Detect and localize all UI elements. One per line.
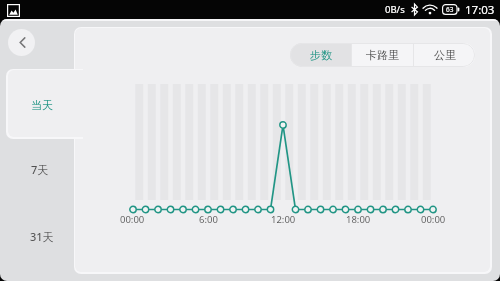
button[interactable]: 公里 [414,43,475,67]
staticText: 0B/s [385,3,405,16]
staticText: 00:00 [120,213,145,226]
other: Battery 63 percent [442,4,460,15]
staticText: 当天 [31,98,53,112]
staticText: 7天 [31,162,49,177]
staticText: 12:00 [271,213,296,226]
staticText: 18:00 [346,213,371,226]
button[interactable]: 卡路里 [352,43,413,67]
other: Wi-Fi [424,5,436,15]
staticText: 63 [446,5,454,14]
staticText: 17:03 [465,2,495,18]
button[interactable]: 31天 [8,203,76,270]
button[interactable]: 7天 [8,136,76,203]
staticText: 31天 [30,229,54,244]
button[interactable]: 当天 [8,71,76,138]
staticText: 00:00 [421,213,446,226]
staticText: 公里 [434,48,456,62]
staticText: 步数 [310,48,332,62]
button[interactable]: Back [8,29,35,56]
other: Bluetooth [411,4,418,15]
other: Screenshot [7,4,20,17]
staticText: 6:00 [199,213,218,226]
button[interactable]: 步数 [290,43,351,67]
staticText: 卡路里 [366,48,399,62]
